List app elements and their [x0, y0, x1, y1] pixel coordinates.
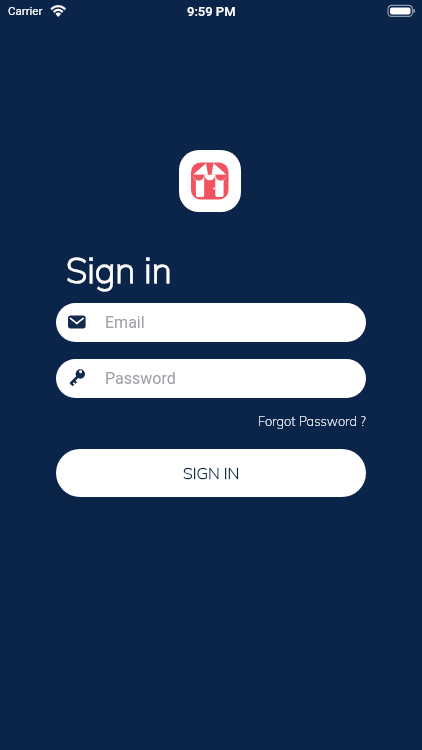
staticText: Sign in	[66, 248, 172, 292]
staticText: Email	[105, 313, 145, 332]
button[interactable]: Forgot Password ?	[258, 413, 366, 429]
button[interactable]: Email	[56, 303, 366, 342]
button[interactable]: Password	[56, 359, 366, 398]
button[interactable]: SIGN IN	[56, 449, 366, 497]
staticText: SIGN IN	[183, 463, 240, 483]
staticText: Carrier	[8, 4, 43, 17]
staticText: Password	[105, 369, 176, 388]
staticText: 9:59 PM	[187, 4, 236, 19]
